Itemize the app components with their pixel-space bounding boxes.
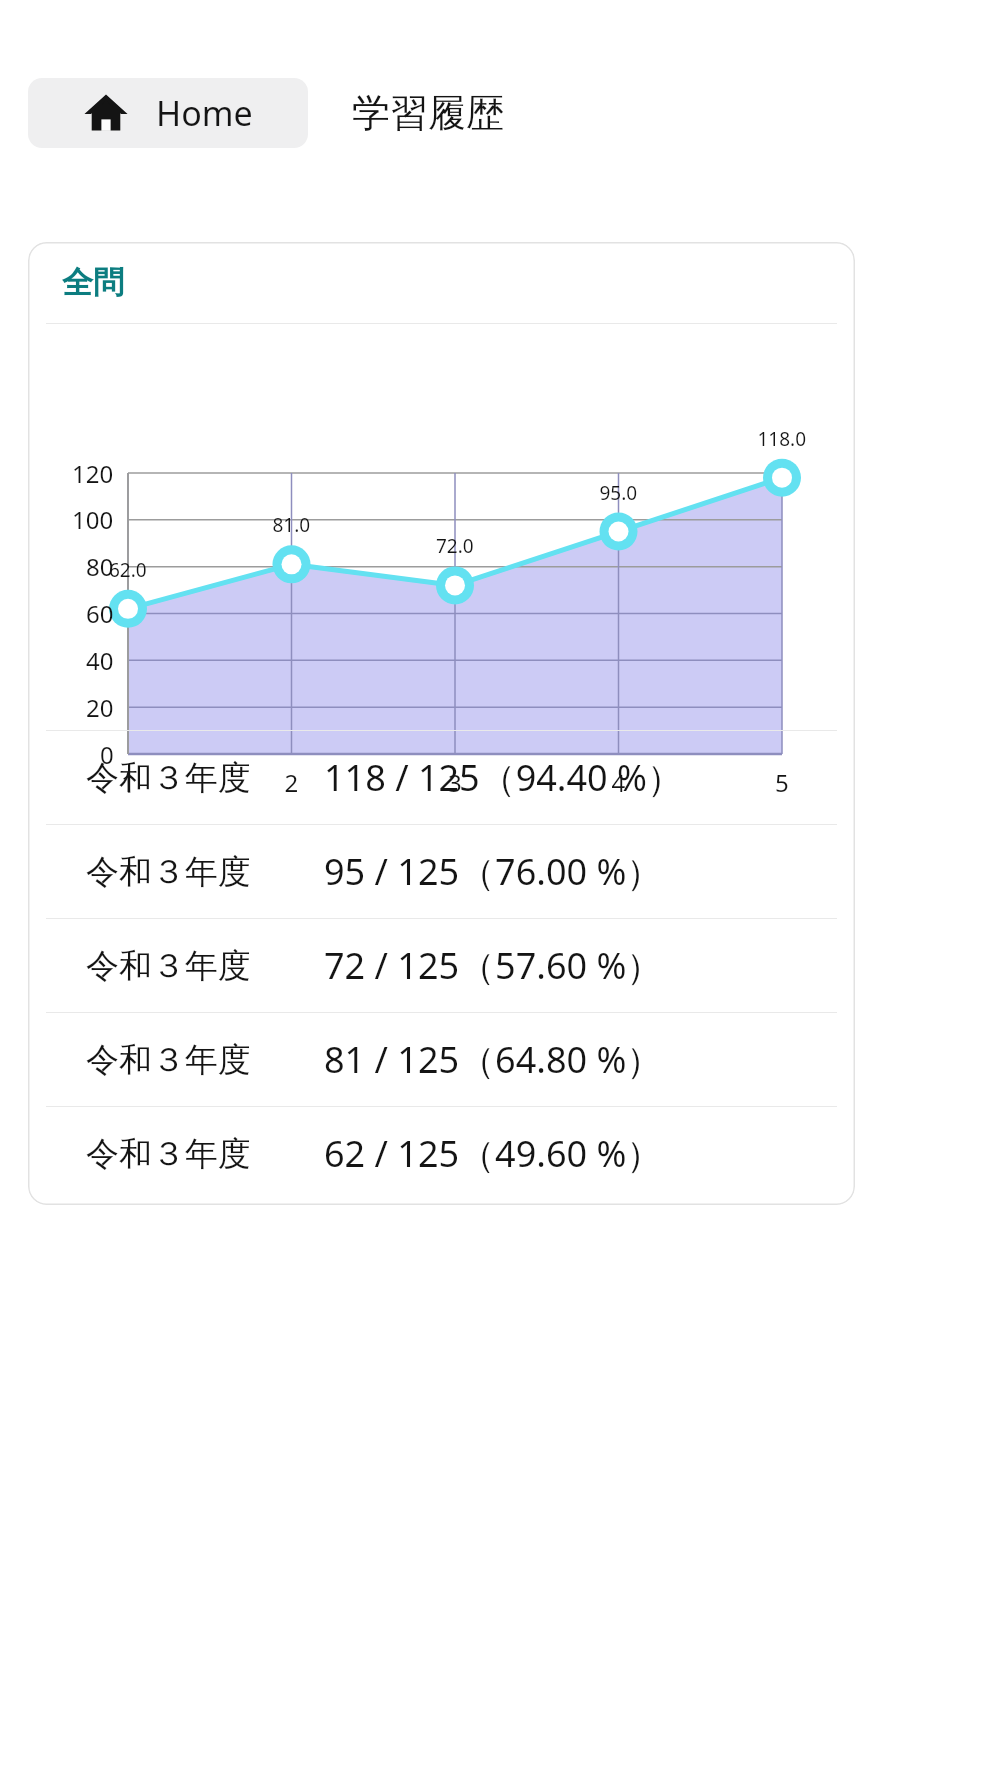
staticText: Home (156, 90, 253, 136)
staticText: 118 / 125（94.40 %） (324, 753, 683, 802)
button[interactable]: 令和３年度 (28, 1107, 855, 1200)
staticText: 95 / 125（76.00 %） (324, 847, 663, 896)
staticText: 学習履歴 (352, 89, 504, 137)
staticText: 62 / 125（49.60 %） (324, 1129, 663, 1178)
button[interactable]: 令和３年度 (28, 731, 855, 824)
button[interactable]: 令和３年度 (28, 1013, 855, 1106)
staticText: 令和３年度 (86, 851, 251, 893)
staticText: 令和３年度 (86, 757, 251, 799)
staticText: 全問 (62, 263, 124, 302)
button[interactable]: Home (28, 78, 308, 148)
staticText: 令和３年度 (86, 1133, 251, 1175)
staticText: 令和３年度 (86, 1039, 251, 1081)
staticText: 72 / 125（57.60 %） (324, 941, 663, 990)
button[interactable]: 令和３年度 (28, 825, 855, 918)
staticText: 81 / 125（64.80 %） (324, 1035, 663, 1084)
staticText: 令和３年度 (86, 945, 251, 987)
other: Home (84, 91, 128, 135)
button[interactable]: 令和３年度 (28, 919, 855, 1012)
